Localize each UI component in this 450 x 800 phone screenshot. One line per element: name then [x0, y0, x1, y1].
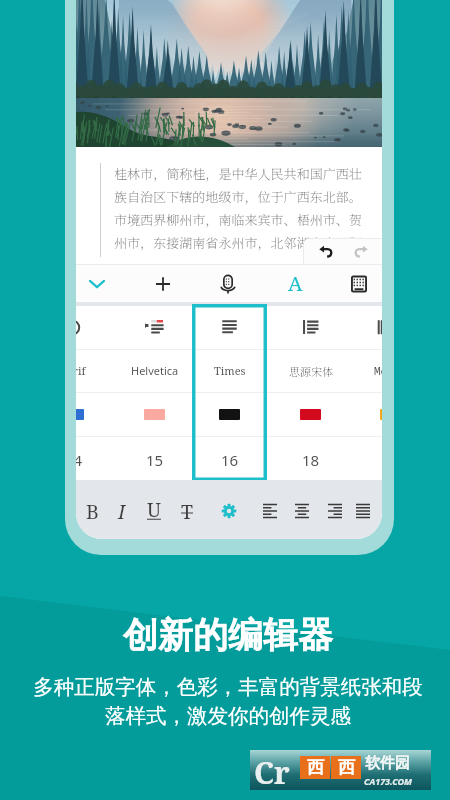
button[interactable]: Colour 5 — [351, 392, 382, 436]
staticText: CA173.COM — [364, 775, 413, 787]
button[interactable]: Strikethrough — [173, 497, 201, 525]
button[interactable]: Size 16 — [190, 438, 269, 482]
staticText: U — [147, 496, 161, 523]
button[interactable]: Hide keyboard — [77, 264, 117, 304]
staticText: 西 — [338, 757, 355, 778]
staticText: 西 — [307, 757, 324, 778]
button[interactable]: Font 思源宋体 — [271, 349, 350, 392]
button[interactable]: Font Helvetica — [115, 349, 194, 392]
button[interactable]: Paragraph style 5 — [351, 306, 382, 349]
staticText: Serif — [76, 363, 86, 378]
button[interactable]: Align left — [256, 497, 284, 525]
staticText: Menlo — [374, 363, 382, 378]
button[interactable]: Paragraph style 1 — [76, 306, 113, 349]
staticText: 软件园 — [365, 754, 410, 773]
staticText: 多种正版字体，色彩，丰富的背景纸张和段 落样式，激发你的创作灵感 — [33, 674, 423, 729]
button[interactable]: Underline — [140, 495, 168, 523]
button[interactable]: Paragraph style 3 — [190, 306, 269, 349]
staticText: I — [118, 498, 126, 525]
button[interactable]: Size 20 — [351, 438, 382, 482]
staticText: Helvetica — [131, 363, 179, 378]
button[interactable]: Undo — [314, 240, 338, 264]
staticText: 桂林市，简称桂，是中华人民共和国广西壮 族自治区下辖的地级市，位于广西东北部。 … — [114, 164, 362, 252]
staticText: Cr — [254, 752, 290, 792]
button[interactable]: Paragraph style 2 — [115, 306, 194, 349]
button[interactable]: Size 18 — [271, 438, 350, 482]
button[interactable]: Colour 1 — [76, 392, 113, 436]
button[interactable]: Keyboard — [339, 264, 379, 304]
button[interactable]: Align right — [321, 497, 349, 525]
button[interactable]: Colour 3 — [190, 392, 269, 436]
button[interactable]: Paragraph style 4 — [271, 306, 350, 349]
staticText: 思源宋体 — [289, 363, 333, 379]
button[interactable]: Colour 2 — [115, 392, 194, 436]
button[interactable]: Voice input — [208, 264, 248, 304]
button[interactable]: Settings — [215, 497, 243, 525]
button[interactable]: Redo — [349, 240, 373, 264]
button[interactable]: Italic — [108, 497, 136, 525]
button[interactable]: Insert — [143, 264, 183, 304]
staticText: T — [181, 498, 193, 525]
staticText: 14 — [76, 450, 83, 470]
staticText: A — [288, 269, 303, 297]
button[interactable]: Text style — [275, 263, 315, 303]
staticText: B — [86, 498, 99, 525]
button[interactable]: Size 15 — [115, 438, 194, 482]
button[interactable]: Font Times — [190, 349, 269, 392]
staticText: 15 — [146, 450, 164, 470]
staticText: 创新的编辑器 — [123, 613, 333, 657]
button[interactable]: Size 14 — [76, 438, 113, 482]
button[interactable]: Justify — [349, 497, 377, 525]
staticText: Times — [214, 363, 246, 378]
button[interactable]: Colour 4 — [271, 392, 350, 436]
button[interactable]: Align center — [288, 497, 316, 525]
button[interactable]: Font Menlo — [351, 349, 382, 392]
staticText: 16 — [221, 450, 239, 470]
staticText: 18 — [302, 450, 320, 470]
button[interactable]: Bold — [78, 497, 106, 525]
button[interactable]: Font Serif — [76, 349, 113, 392]
